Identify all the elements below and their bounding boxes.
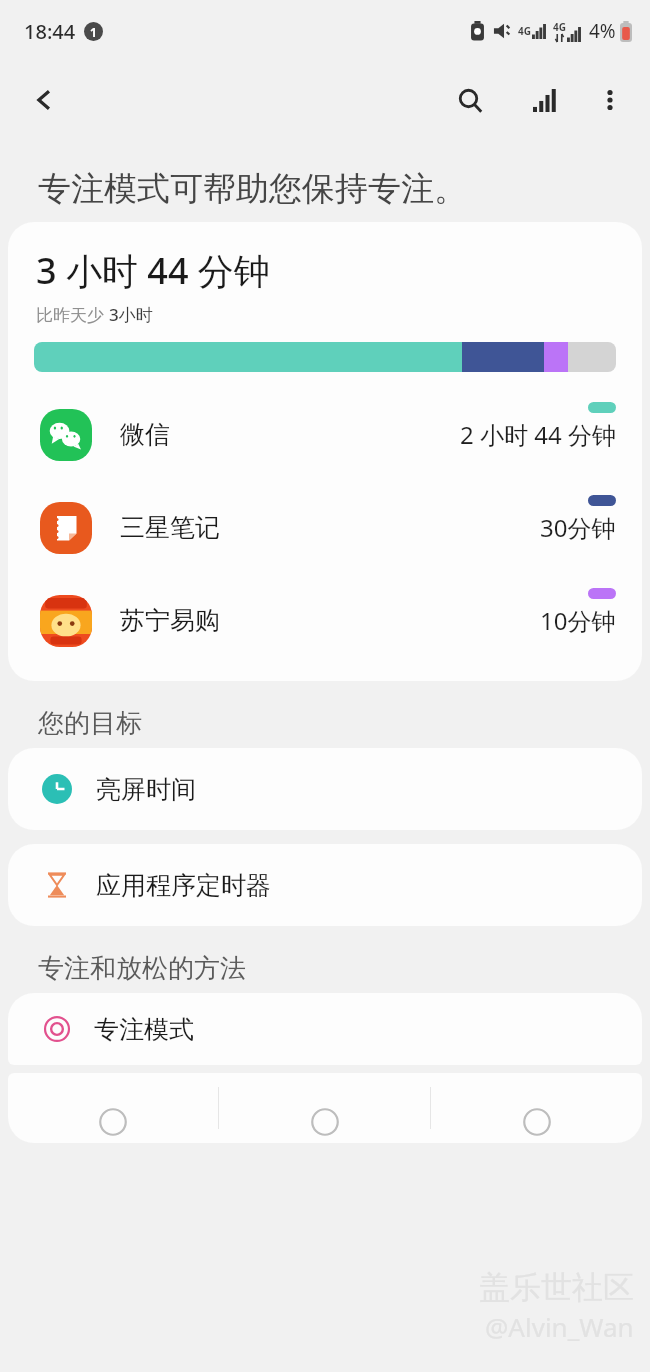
staticText: 10分钟 <box>540 604 616 637</box>
staticText: 4G <box>553 20 566 34</box>
staticText: 比昨天少 <box>36 303 109 326</box>
staticText: 3小时 <box>109 303 153 326</box>
button[interactable]: 3 小时 44 分钟 <box>8 222 642 681</box>
staticText: 盖乐世社区 <box>479 1268 634 1307</box>
staticText: 18:44 <box>24 18 76 45</box>
staticText: 微信 <box>120 419 170 450</box>
button[interactable]: 应用程序定时器 <box>8 844 642 926</box>
staticText: 4G <box>518 24 531 38</box>
button[interactable]: Statistics <box>518 74 570 126</box>
staticText: 专注模式 <box>94 1014 194 1045</box>
button[interactable]: 微信 <box>8 388 642 481</box>
button[interactable] <box>431 1073 642 1143</box>
button[interactable]: Back <box>22 77 68 123</box>
staticText: 亮屏时间 <box>96 774 196 805</box>
staticText: 2 小时 44 分钟 <box>460 418 616 451</box>
staticText: 应用程序定时器 <box>96 870 271 901</box>
button[interactable] <box>8 1073 218 1143</box>
staticText: 三星笔记 <box>120 512 220 543</box>
button[interactable] <box>219 1073 430 1143</box>
button[interactable]: 亮屏时间 <box>8 748 642 830</box>
button[interactable]: 三星笔记 <box>8 481 642 574</box>
staticText: 1 <box>90 24 97 40</box>
button[interactable]: More options <box>584 74 636 126</box>
button[interactable]: Search <box>444 74 496 126</box>
button[interactable]: 专注模式 <box>8 993 642 1065</box>
staticText: 您的目标 <box>38 707 142 740</box>
staticText: @Alvin_Wan <box>485 1309 634 1344</box>
staticText: 4% <box>589 18 616 44</box>
staticText: 苏宁易购 <box>120 605 220 636</box>
button[interactable]: 苏宁易购 <box>8 574 642 667</box>
staticText: 3 小时 44 分钟 <box>36 246 270 295</box>
staticText: 专注和放松的方法 <box>38 952 246 985</box>
staticText: 30分钟 <box>540 511 616 544</box>
staticText: 专注模式可帮助您保持专注。 <box>38 168 467 210</box>
